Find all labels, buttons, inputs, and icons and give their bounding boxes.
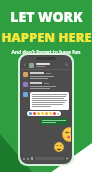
button[interactable]: Kiss emoji: [62, 127, 71, 142]
button[interactable]: Back: [21, 61, 71, 69]
other: Send: [66, 157, 69, 160]
other: Back: [23, 63, 27, 67]
button[interactable]: [30, 92, 69, 110]
button[interactable]: [40, 118, 68, 125]
button[interactable]: Send: [21, 154, 71, 163]
staticText: LET WORK: [10, 7, 83, 26]
button[interactable]: [27, 111, 61, 116]
other: Search: [65, 63, 69, 67]
staticText: HAPPEN HERE: [1, 28, 92, 46]
button[interactable]: Laughing emoji: [54, 142, 64, 152]
staticText: And don't forget to have fun with your c…: [11, 49, 81, 63]
